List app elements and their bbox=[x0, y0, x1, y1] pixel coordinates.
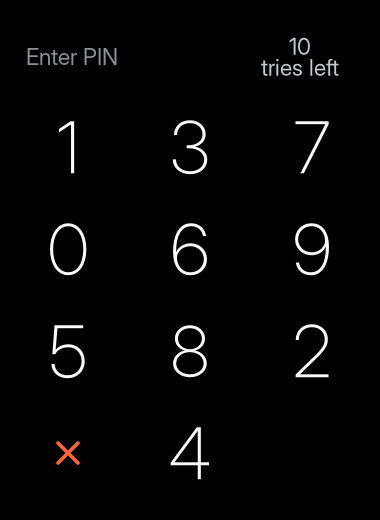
staticText: 3 bbox=[170, 103, 210, 190]
staticText: 0 bbox=[47, 205, 88, 292]
button[interactable]: 4 bbox=[129, 402, 251, 504]
staticText: 10 bbox=[289, 33, 311, 60]
button[interactable]: 0 bbox=[7, 198, 129, 300]
button[interactable]: 5 bbox=[7, 300, 129, 402]
button[interactable]: 9 bbox=[251, 198, 373, 300]
button[interactable]: 2 bbox=[251, 300, 373, 402]
staticText: 2 bbox=[292, 307, 331, 394]
staticText: 5 bbox=[49, 307, 87, 394]
staticText: 4 bbox=[168, 409, 211, 496]
staticText: tries left bbox=[261, 54, 339, 81]
staticText: 6 bbox=[170, 205, 209, 292]
staticText: Enter PIN bbox=[26, 43, 118, 70]
staticText: 9 bbox=[292, 205, 331, 292]
button[interactable]: Delete bbox=[7, 402, 129, 504]
staticText: 1 bbox=[56, 103, 79, 190]
staticText: 7 bbox=[293, 103, 330, 190]
button[interactable]: 6 bbox=[129, 198, 251, 300]
button[interactable]: 3 bbox=[129, 96, 251, 198]
button[interactable]: 7 bbox=[251, 96, 373, 198]
staticText: 8 bbox=[170, 307, 209, 394]
button[interactable]: 8 bbox=[129, 300, 251, 402]
button[interactable]: 1 bbox=[7, 96, 129, 198]
